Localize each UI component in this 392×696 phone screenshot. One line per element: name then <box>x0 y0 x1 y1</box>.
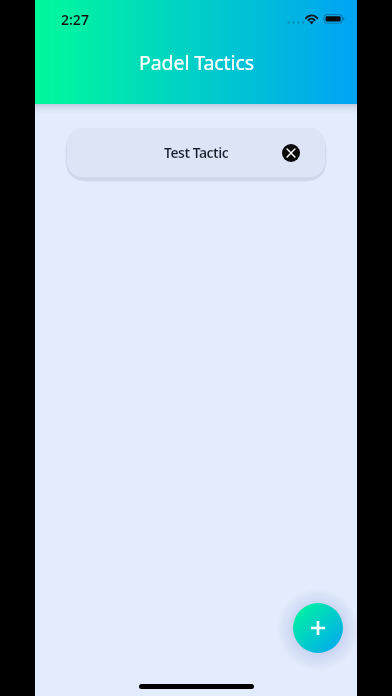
button[interactable]: Delete tactic <box>282 144 300 162</box>
button[interactable]: Test Tactic <box>67 128 325 177</box>
staticText: Test Tactic <box>164 143 229 162</box>
staticText: Padel Tactics <box>139 49 254 76</box>
staticText: 2:27 <box>61 10 89 29</box>
button[interactable]: Add tactic <box>293 603 343 653</box>
